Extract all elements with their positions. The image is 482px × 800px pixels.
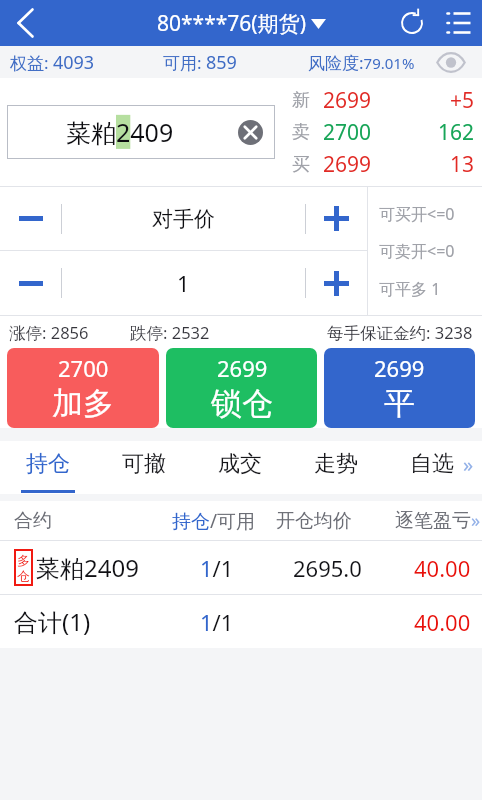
staticText: 成交 (218, 450, 262, 478)
button[interactable]: More tabs (454, 441, 482, 494)
staticText: 买 (292, 153, 310, 176)
staticText: 自选 (410, 450, 454, 478)
button[interactable]: 2699 (324, 348, 475, 428)
staticText: 对手价 (152, 206, 215, 232)
button[interactable]: 可用: 859 (163, 50, 237, 75)
staticText: 80****76(期货) (157, 9, 306, 38)
button[interactable]: Increase (306, 251, 367, 315)
button[interactable]: 80****76(期货) (157, 9, 326, 38)
button[interactable]: Back (0, 0, 50, 46)
button[interactable]: 风险度:79.01% (308, 51, 415, 74)
staticText: 菜粕2409 (66, 115, 174, 149)
button[interactable]: 2700 (7, 348, 159, 428)
staticText: 1/1 (200, 553, 234, 583)
staticText: 新 (292, 89, 310, 112)
staticText: 持仓 (26, 450, 70, 478)
button[interactable]: 走势 (288, 441, 384, 494)
button[interactable]: 成交 (192, 441, 288, 494)
button[interactable]: 2699 (166, 348, 317, 428)
staticText: 40.00 (414, 607, 471, 637)
button[interactable]: Decrease (0, 251, 61, 315)
staticText: 菜粕2409 (36, 551, 139, 584)
staticText: 开仓均价 (276, 509, 352, 533)
staticText: 风险度:79.01% (308, 51, 415, 74)
staticText: 平 (384, 384, 415, 423)
button[interactable]: Decrease (0, 187, 61, 250)
button[interactable]: Clear (225, 105, 275, 159)
staticText: 锁仓 (211, 384, 273, 423)
staticText: 加多 (52, 384, 114, 423)
button[interactable]: 可撤 (96, 441, 192, 494)
staticText: 可买开<=0 (379, 203, 455, 225)
button[interactable]: Refresh (388, 0, 436, 46)
staticText: 2695.0 (293, 553, 362, 583)
staticText: 2699 (323, 150, 372, 179)
staticText: 可平多 1 (379, 278, 441, 300)
staticText: 2700 (323, 118, 372, 147)
staticText: 2700 (58, 353, 109, 383)
button[interactable]: 新 (288, 84, 482, 116)
button[interactable]: 权益: 4093 (10, 50, 95, 75)
staticText: 可卖开<=0 (379, 240, 455, 262)
staticText: 涨停: 2856 (9, 321, 89, 344)
button[interactable]: 菜粕2409 (7, 105, 275, 159)
staticText: » (463, 451, 474, 478)
staticText: 2699 (374, 353, 425, 383)
staticText: +5 (450, 86, 475, 115)
staticText: 仓 (17, 568, 30, 584)
staticText: 权益: 4093 (10, 50, 95, 75)
staticText: 13 (450, 150, 475, 179)
staticText: 1 (177, 268, 190, 298)
button[interactable]: Toggle balance visibility (434, 46, 468, 78)
staticText: 可撤 (122, 450, 166, 478)
button[interactable]: 卖 (288, 116, 482, 148)
staticText: 逐笔盈亏 (395, 509, 471, 533)
staticText: 40.00 (414, 553, 471, 583)
staticText: 合计(1) (14, 605, 91, 638)
staticText: » (471, 508, 481, 533)
button[interactable]: Menu (436, 0, 482, 46)
staticText: 162 (438, 118, 475, 147)
staticText: 合约 (14, 509, 52, 533)
staticText: 走势 (314, 450, 358, 478)
staticText: 持仓/可用 (172, 508, 256, 534)
button[interactable]: 买 (288, 148, 482, 180)
button[interactable]: 自选 (384, 441, 480, 494)
staticText: 卖 (292, 121, 310, 144)
staticText: 每手保证金约: 3238 (327, 321, 473, 344)
staticText: 可用: 859 (163, 50, 237, 75)
staticText: 多 (17, 552, 30, 568)
button[interactable]: 多 (0, 541, 482, 594)
staticText: 2699 (217, 353, 268, 383)
staticText: 跌停: 2532 (130, 321, 210, 344)
button[interactable]: Increase (306, 187, 367, 250)
button[interactable]: 持仓 (0, 441, 96, 494)
staticText: 1/1 (200, 607, 234, 637)
staticText: 2699 (323, 86, 372, 115)
